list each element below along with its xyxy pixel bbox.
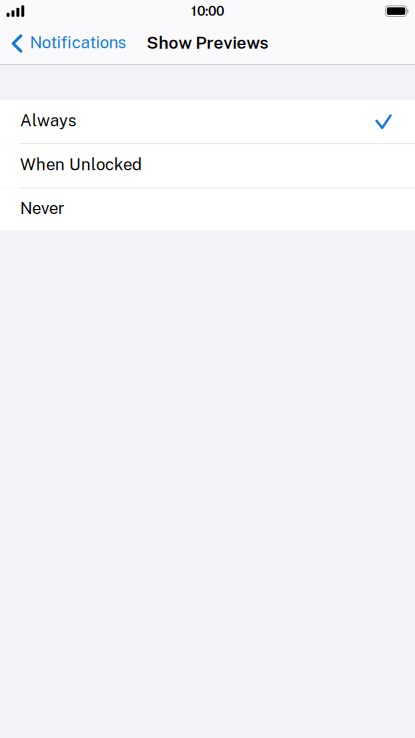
staticText: Always: [20, 110, 76, 130]
staticText: Show Previews: [146, 32, 268, 53]
button[interactable]: Always: [0, 100, 415, 143]
button[interactable]: Never: [0, 188, 415, 231]
staticText: Never: [20, 198, 64, 218]
button[interactable]: Back to Notifications: [0, 23, 136, 64]
staticText: 10:00: [191, 3, 224, 19]
staticText: When Unlocked: [20, 154, 142, 174]
button[interactable]: When Unlocked: [0, 144, 415, 188]
staticText: Notifications: [30, 33, 126, 52]
